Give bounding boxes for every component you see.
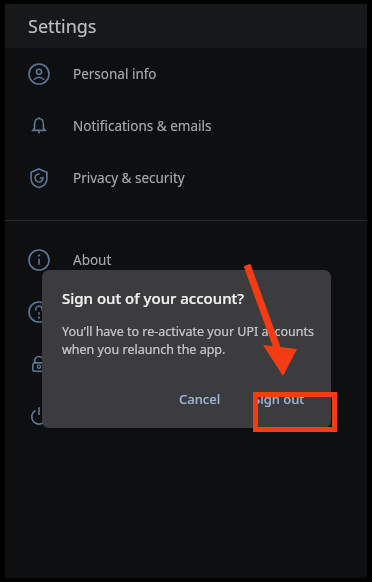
staticText: You’ll have to re-activate your UPI acco… xyxy=(62,323,315,358)
button[interactable]: Cancel xyxy=(165,380,235,418)
button[interactable] xyxy=(5,338,367,390)
staticText: Sign out of your account? xyxy=(62,288,245,308)
button[interactable] xyxy=(5,286,367,338)
staticText: Notifications & emails xyxy=(73,117,212,135)
button[interactable]: Notifications & emails xyxy=(5,100,367,152)
button[interactable]: Privacy & security xyxy=(5,152,367,204)
other: Highlight around Sign out xyxy=(253,392,337,432)
button[interactable]: About xyxy=(5,234,367,286)
staticText: Personal info xyxy=(73,65,157,83)
button[interactable]: Sign out xyxy=(239,380,319,418)
button[interactable]: Personal info xyxy=(5,48,367,100)
staticText: Sign out xyxy=(253,390,305,408)
staticText: About xyxy=(73,251,112,269)
staticText: Settings xyxy=(28,14,97,39)
button[interactable] xyxy=(5,390,367,442)
staticText: Privacy & security xyxy=(73,169,185,187)
staticText: Cancel xyxy=(179,390,221,408)
